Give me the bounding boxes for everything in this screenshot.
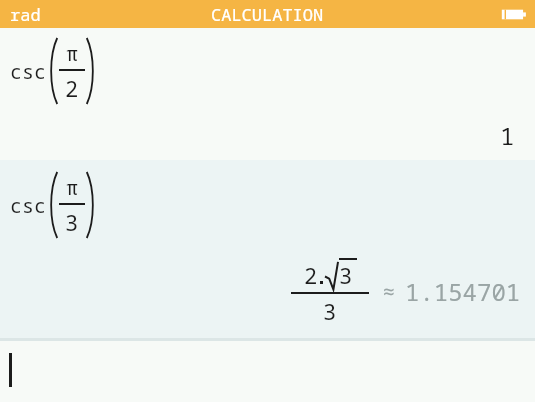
staticText: 1.154701: [405, 275, 521, 308]
other: Battery: [499, 7, 527, 22]
staticText: 3: [65, 207, 79, 237]
staticText: CALCULATION: [211, 3, 324, 26]
button[interactable]: csc: [0, 160, 535, 338]
staticText: 1: [500, 119, 515, 152]
staticText: π: [66, 174, 78, 201]
staticText: 3: [323, 296, 337, 326]
staticText: ≈: [383, 278, 395, 305]
button[interactable]: [0, 341, 535, 402]
staticText: 2: [304, 260, 318, 290]
staticText: rad: [10, 3, 41, 26]
button[interactable]: csc: [0, 28, 535, 160]
staticText: π: [66, 40, 78, 67]
staticText: 2: [65, 73, 79, 103]
staticText: csc: [10, 58, 46, 85]
staticText: csc: [10, 192, 46, 219]
staticText: 3: [339, 260, 353, 290]
